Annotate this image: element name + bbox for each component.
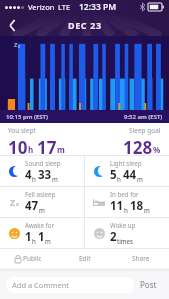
staticText: 33 bbox=[38, 167, 52, 183]
staticText: DEC 23 bbox=[68, 19, 102, 31]
staticText: m bbox=[144, 206, 150, 214]
button[interactable]: Share bbox=[113, 249, 169, 268]
staticText: You slept bbox=[8, 126, 36, 135]
button[interactable]: Z bbox=[7, 187, 84, 217]
staticText: Woke up bbox=[110, 221, 136, 229]
staticText: h bbox=[28, 144, 34, 155]
button[interactable]: Woke up bbox=[92, 218, 169, 248]
staticText: 17 bbox=[37, 136, 57, 155]
staticText: 12:33 PM bbox=[79, 1, 117, 13]
staticText: 10:15 pm (EST) bbox=[6, 113, 48, 121]
staticText: m bbox=[52, 175, 58, 183]
button[interactable]: Edit bbox=[57, 249, 113, 268]
staticText: z bbox=[16, 200, 19, 208]
staticText: m bbox=[57, 144, 65, 155]
staticText: In bed for bbox=[110, 190, 139, 198]
staticText: LTE bbox=[58, 2, 71, 12]
staticText: Sound sleep bbox=[25, 159, 61, 167]
button[interactable]: Add a Comment bbox=[6, 277, 134, 293]
staticText: 47 bbox=[25, 198, 39, 214]
staticText: Verizon bbox=[28, 2, 55, 12]
staticText: Z bbox=[10, 196, 16, 208]
staticText: 5 bbox=[110, 167, 117, 183]
staticText: m bbox=[137, 175, 143, 183]
button[interactable]: Light sleep bbox=[92, 156, 169, 186]
staticText: 18 bbox=[130, 198, 144, 214]
staticText: z bbox=[18, 43, 21, 49]
staticText: m bbox=[45, 237, 51, 245]
staticText: 11 bbox=[110, 198, 124, 214]
staticText: Fell asleep bbox=[25, 190, 56, 198]
button[interactable]: Awake for bbox=[7, 218, 84, 248]
staticText: times bbox=[117, 237, 134, 245]
button[interactable]: Post bbox=[140, 279, 157, 290]
staticText: 9:52 am (EST) bbox=[124, 113, 163, 121]
button[interactable]: Public bbox=[0, 249, 57, 268]
staticText: Post bbox=[140, 279, 157, 290]
staticText: Z bbox=[14, 41, 18, 49]
staticText: Light sleep bbox=[110, 159, 142, 167]
staticText: 10 bbox=[8, 136, 28, 155]
staticText: m bbox=[39, 206, 45, 214]
staticText: 44 bbox=[123, 167, 137, 183]
staticText: 1 bbox=[25, 229, 32, 245]
staticText: Add a Comment bbox=[12, 280, 69, 290]
button[interactable]: Back bbox=[0, 14, 24, 36]
staticText: % bbox=[153, 144, 161, 155]
staticText: h bbox=[117, 175, 121, 183]
staticText: h bbox=[32, 237, 36, 245]
staticText: 2 bbox=[110, 229, 117, 245]
staticText: 1 bbox=[38, 229, 45, 245]
staticText: 4 bbox=[25, 167, 32, 183]
staticText: Awake for bbox=[25, 221, 55, 229]
staticText: Share bbox=[132, 254, 150, 263]
staticText: Public bbox=[23, 254, 42, 263]
staticText: Edit bbox=[79, 254, 91, 263]
button[interactable]: Sound sleep bbox=[7, 156, 84, 186]
button[interactable]: In bed for bbox=[92, 187, 169, 217]
staticText: Sleep goal bbox=[129, 126, 161, 135]
staticText: 128 bbox=[123, 136, 153, 155]
staticText: h bbox=[124, 206, 128, 214]
staticText: h bbox=[32, 175, 36, 183]
